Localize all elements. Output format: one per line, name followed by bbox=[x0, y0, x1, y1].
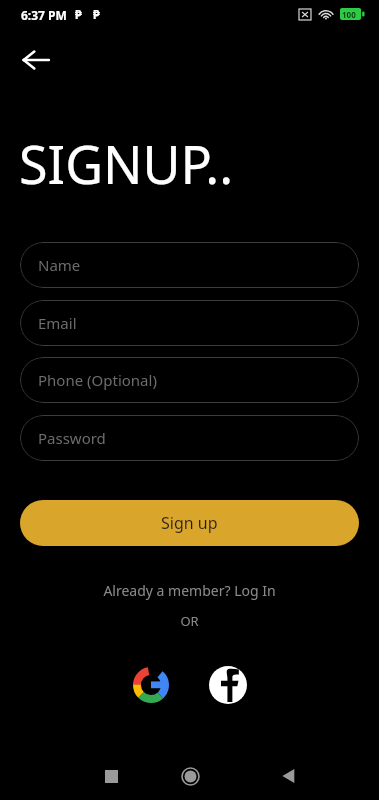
button[interactable]: Phone (Optional) bbox=[20, 357, 359, 403]
button[interactable]: Home bbox=[170, 756, 210, 796]
button[interactable]: Back bbox=[268, 756, 308, 796]
button[interactable]: Back bbox=[14, 38, 58, 82]
staticText: Name bbox=[38, 255, 81, 275]
staticText: ₱ bbox=[75, 6, 82, 22]
button[interactable]: Sign up with Facebook bbox=[203, 660, 253, 710]
button[interactable]: Name bbox=[20, 242, 359, 288]
button[interactable]: Already a member? Log In bbox=[0, 578, 379, 602]
button[interactable]: Email bbox=[20, 300, 359, 346]
button[interactable]: Recent apps bbox=[91, 756, 131, 796]
button[interactable]: Sign up bbox=[20, 500, 359, 546]
staticText: Sign up bbox=[161, 512, 218, 534]
staticText: 100 bbox=[342, 9, 356, 20]
staticText: Password bbox=[38, 428, 106, 448]
staticText: 6:37 PM bbox=[21, 7, 67, 23]
staticText: ₱ bbox=[93, 6, 100, 22]
staticText: Email bbox=[38, 313, 77, 333]
staticText: SIGNUP.. bbox=[19, 128, 234, 199]
button[interactable]: Sign up with Google bbox=[126, 660, 176, 710]
staticText: Phone (Optional) bbox=[38, 370, 157, 390]
staticText: OR bbox=[180, 612, 199, 630]
staticText: Already a member? Log In bbox=[103, 581, 276, 600]
button[interactable]: Password bbox=[20, 415, 359, 461]
